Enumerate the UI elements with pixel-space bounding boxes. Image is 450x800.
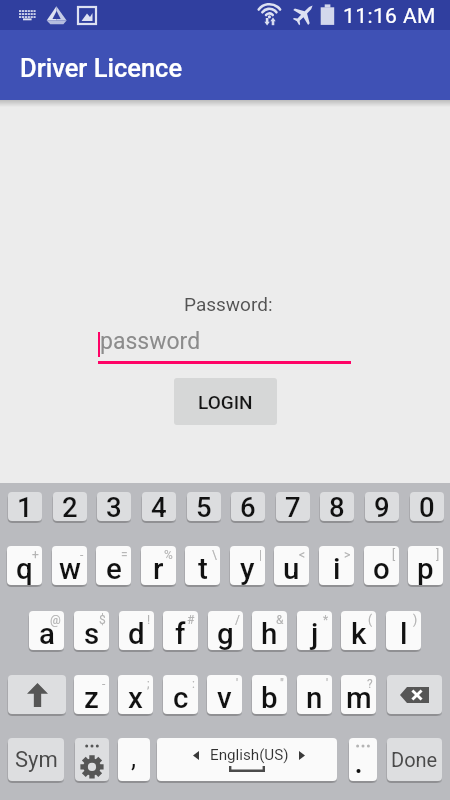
staticText: w <box>59 552 81 585</box>
button[interactable]: u <box>274 546 309 585</box>
staticText: 1 <box>17 492 33 520</box>
button[interactable]: z <box>74 675 109 714</box>
staticText: * <box>323 613 329 627</box>
staticText: \ <box>212 548 217 562</box>
staticText: t <box>198 552 208 585</box>
button[interactable]: Done <box>387 738 442 781</box>
staticText: : <box>192 677 195 691</box>
button[interactable]: Settings <box>75 738 109 781</box>
staticText: e <box>106 552 122 585</box>
button[interactable]: g <box>208 611 243 650</box>
staticText: ) <box>413 613 418 627</box>
button[interactable]: Space <box>157 738 337 781</box>
button[interactable]: , <box>118 738 150 781</box>
staticText: - <box>80 548 84 562</box>
button[interactable]: r <box>141 546 176 585</box>
staticText: ' <box>236 677 239 691</box>
staticText: r <box>153 552 164 585</box>
staticText: < <box>299 548 306 562</box>
button[interactable]: n <box>297 675 332 714</box>
staticText: + <box>32 548 39 562</box>
button[interactable]: f <box>163 611 198 650</box>
staticText: 6 <box>240 492 256 520</box>
staticText: > <box>344 548 351 562</box>
button[interactable]: i <box>319 546 354 585</box>
staticText: d <box>128 617 145 650</box>
staticText: s <box>84 617 100 650</box>
staticText: - <box>102 677 106 691</box>
staticText: b <box>261 681 278 714</box>
staticText: a <box>39 617 55 650</box>
staticText: / <box>235 613 240 627</box>
staticText: ] <box>436 548 440 562</box>
staticText: c <box>173 681 189 714</box>
button[interactable]: h <box>252 611 287 650</box>
staticText: | <box>259 548 262 562</box>
staticText: o <box>373 552 390 585</box>
staticText: English(US) <box>210 746 289 764</box>
staticText: 11:16 AM <box>343 4 436 29</box>
staticText: h <box>261 617 278 650</box>
button[interactable]: Period <box>349 738 377 781</box>
button[interactable]: Shift <box>8 675 66 714</box>
button[interactable]: d <box>119 611 154 650</box>
staticText: ! <box>147 613 151 627</box>
staticText: 5 <box>196 492 212 520</box>
staticText: Driver Licence <box>20 53 183 83</box>
button[interactable]: b <box>252 675 287 714</box>
button[interactable]: a <box>29 611 64 650</box>
staticText: u <box>283 552 300 585</box>
staticText: ( <box>368 613 373 627</box>
button[interactable]: k <box>341 611 376 650</box>
button[interactable]: 4 <box>142 492 176 521</box>
staticText: 3 <box>106 492 122 520</box>
button[interactable]: 9 <box>365 492 399 521</box>
staticText: 0 <box>419 492 435 520</box>
button[interactable]: t <box>185 546 220 585</box>
button[interactable]: m <box>341 675 376 714</box>
staticText: # <box>187 613 195 627</box>
button[interactable]: j <box>297 611 332 650</box>
button[interactable]: Sym <box>8 738 64 781</box>
button[interactable]: e <box>96 546 131 585</box>
button[interactable]: x <box>118 675 153 714</box>
staticText: 2 <box>62 492 78 520</box>
button[interactable]: w <box>52 546 87 585</box>
button[interactable]: o <box>364 546 399 585</box>
button[interactable]: 0 <box>410 492 444 521</box>
staticText: j <box>311 617 319 650</box>
button[interactable]: 3 <box>97 492 131 521</box>
staticText: @ <box>50 613 61 627</box>
staticText: f <box>175 617 186 650</box>
button[interactable]: 1 <box>8 492 42 521</box>
staticText: p <box>417 552 434 585</box>
staticText: m <box>346 681 372 714</box>
button[interactable]: c <box>163 675 198 714</box>
staticText: " <box>280 677 284 691</box>
button[interactable]: 5 <box>187 492 221 521</box>
button[interactable]: v <box>207 675 242 714</box>
button[interactable]: s <box>74 611 109 650</box>
staticText: $ <box>99 613 106 627</box>
staticText: z <box>84 681 99 714</box>
button[interactable]: y <box>230 546 265 585</box>
staticText: 9 <box>374 492 390 520</box>
button[interactable]: q <box>7 546 42 585</box>
staticText: % <box>164 548 173 562</box>
button[interactable]: l <box>386 611 421 650</box>
button[interactable]: Backspace <box>387 675 442 714</box>
button[interactable]: 2 <box>53 492 87 521</box>
button[interactable]: 6 <box>231 492 265 521</box>
staticText: Password: <box>184 293 273 315</box>
staticText: [ <box>392 548 396 562</box>
staticText: password <box>100 328 201 355</box>
button[interactable]: LOGIN <box>174 378 277 425</box>
button[interactable]: 7 <box>276 492 310 521</box>
button[interactable]: p <box>408 546 443 585</box>
staticText: ' <box>326 677 329 691</box>
staticText: Sym <box>15 747 58 773</box>
staticText: k <box>351 617 367 650</box>
staticText: 4 <box>151 492 167 520</box>
staticText: v <box>217 681 232 714</box>
button[interactable]: 8 <box>320 492 354 521</box>
